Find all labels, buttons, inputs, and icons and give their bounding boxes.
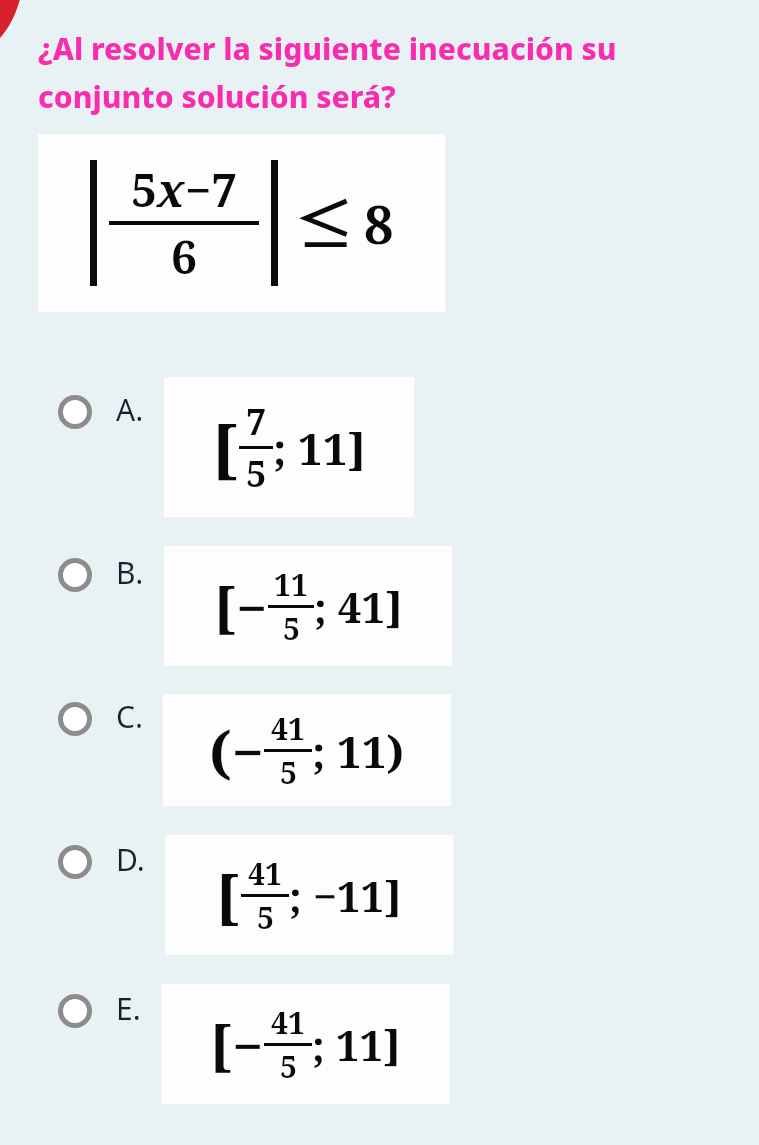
staticText: E. <box>116 988 141 1029</box>
other: Select answer <box>58 395 92 429</box>
other: Select answer <box>58 558 92 592</box>
staticText: [− <box>210 1008 264 1082</box>
staticText: 5 <box>280 752 297 793</box>
staticText: C. <box>116 696 143 737</box>
staticText: (− <box>209 713 264 789</box>
staticText: [ <box>212 404 239 491</box>
staticText: 5 <box>131 158 157 221</box>
staticText: ; 41] <box>314 578 403 635</box>
staticText: ; 11] <box>273 418 366 478</box>
staticText: 5 <box>283 608 300 649</box>
staticText: [ <box>216 856 241 935</box>
staticText: [− <box>214 570 268 644</box>
staticText: 7 <box>246 397 267 446</box>
other: Select answer <box>58 845 92 879</box>
staticText: A. <box>116 389 144 430</box>
other: Select answer <box>58 994 92 1028</box>
button[interactable]: Select answer <box>58 694 451 806</box>
button[interactable]: Select answer <box>58 835 453 955</box>
staticText: 6 <box>171 225 197 288</box>
button[interactable]: Select answer <box>58 984 449 1104</box>
staticText: D. <box>116 839 145 880</box>
staticText: 11 <box>274 564 308 605</box>
staticText: −7 <box>185 158 238 221</box>
staticText: ¿Al resolver la siguiente inecuación su … <box>38 28 729 116</box>
other: Select answer <box>58 702 92 736</box>
staticText: x <box>157 158 185 221</box>
staticText: ; −11] <box>289 867 402 924</box>
staticText: B. <box>116 552 144 593</box>
staticText: 41 <box>271 708 305 749</box>
staticText: 41 <box>271 1002 305 1043</box>
staticText: 5 <box>246 449 267 498</box>
staticText: 8 <box>364 188 394 259</box>
button[interactable]: Select answer <box>58 377 414 517</box>
staticText: 5 <box>257 897 274 938</box>
staticText: ; 11] <box>312 1016 401 1073</box>
staticText: 5 <box>280 1046 297 1087</box>
staticText: 41 <box>248 853 282 894</box>
button[interactable]: Select answer <box>58 546 452 666</box>
staticText: ; 11) <box>312 721 405 781</box>
